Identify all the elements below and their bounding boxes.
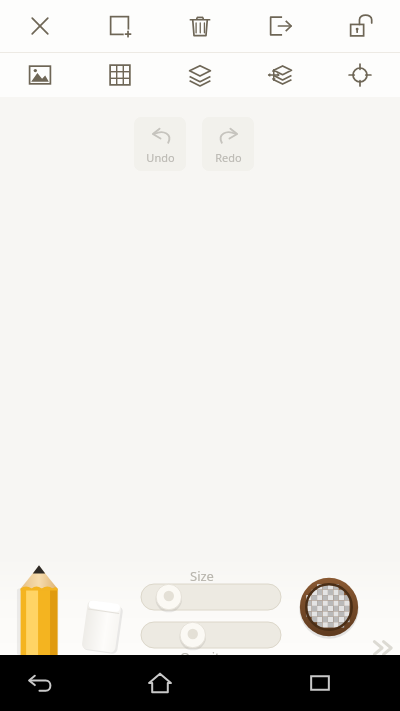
button[interactable]: Delete — [160, 0, 240, 52]
button[interactable]: Close — [0, 0, 80, 52]
button[interactable] — [141, 584, 281, 610]
button[interactable]: Grid — [80, 53, 160, 97]
button[interactable]: Undo — [134, 117, 186, 171]
button[interactable]: Home — [80, 655, 240, 711]
button[interactable]: Center — [320, 53, 400, 97]
staticText: Redo — [215, 150, 242, 165]
button[interactable]: Export — [240, 0, 320, 52]
button[interactable]: Lock — [320, 0, 400, 52]
button[interactable]: Move layer — [240, 53, 320, 97]
button[interactable]: Image — [0, 53, 80, 97]
button[interactable]: Colour — [298, 576, 360, 638]
button[interactable]: Recents — [240, 655, 400, 711]
button[interactable]: Pencil tool — [16, 564, 62, 655]
button[interactable]: Redo — [202, 117, 254, 171]
button[interactable] — [141, 622, 281, 648]
staticText: Undo — [146, 150, 175, 165]
button[interactable]: Layers — [160, 53, 240, 97]
staticText: Opacity — [180, 648, 227, 666]
button[interactable]: More tools — [372, 638, 396, 658]
button[interactable]: Eraser tool — [78, 598, 134, 655]
staticText: Size — [190, 567, 214, 585]
button[interactable]: Back — [0, 655, 80, 711]
button[interactable]: New canvas — [80, 0, 160, 52]
